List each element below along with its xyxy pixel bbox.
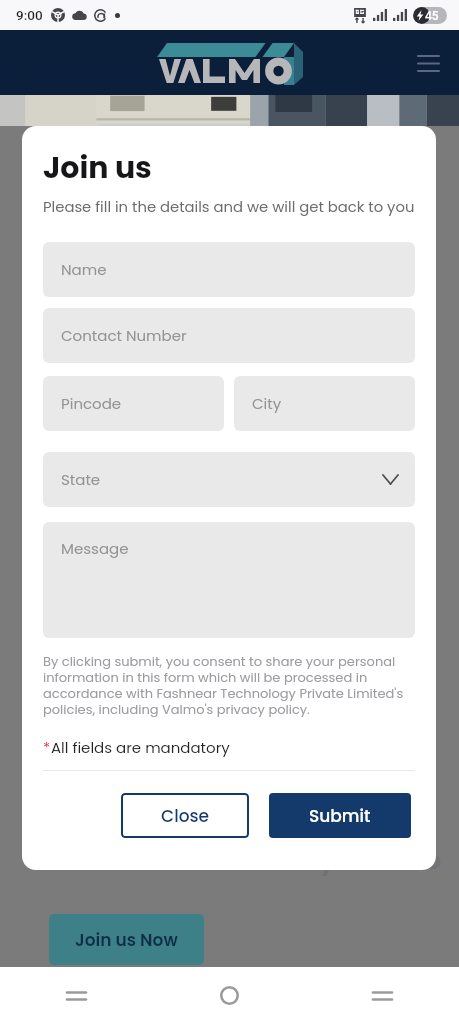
staticText: State: [61, 469, 101, 490]
staticText: All fields are mandatory: [51, 737, 230, 758]
button[interactable]: Menu: [409, 44, 447, 82]
staticText: By clicking submit, you consent to share…: [43, 652, 415, 719]
staticText: Name: [61, 259, 107, 280]
button[interactable]: Recent apps: [306, 967, 459, 1024]
staticText: 9:00: [16, 7, 43, 23]
button[interactable]: Home: [153, 967, 306, 1024]
staticText: Join us: [43, 147, 152, 189]
button[interactable]: Contact Number: [43, 308, 415, 363]
staticText: Message: [61, 538, 129, 559]
button[interactable]: Message: [43, 522, 415, 638]
staticText: Submit: [309, 804, 371, 828]
staticText: Contact Number: [61, 325, 187, 346]
staticText: business - backed by Meesho: [60, 843, 442, 878]
staticText: Join us Now: [75, 928, 178, 952]
button[interactable]: State: [43, 452, 415, 507]
staticText: *: [43, 737, 51, 758]
staticText: 45: [425, 9, 439, 23]
button[interactable]: Join us Now: [49, 914, 204, 965]
staticText: City: [252, 393, 282, 414]
staticText: Pincode: [61, 393, 122, 414]
button[interactable]: Back: [0, 967, 153, 1024]
button[interactable]: City: [234, 376, 415, 431]
button[interactable]: Pincode: [43, 376, 224, 431]
staticText: Close: [161, 804, 210, 828]
button[interactable]: Name: [43, 242, 415, 297]
staticText: Please fill in the details and we will g…: [43, 196, 415, 217]
button[interactable]: Close: [121, 793, 249, 838]
button[interactable]: Submit: [269, 793, 411, 838]
